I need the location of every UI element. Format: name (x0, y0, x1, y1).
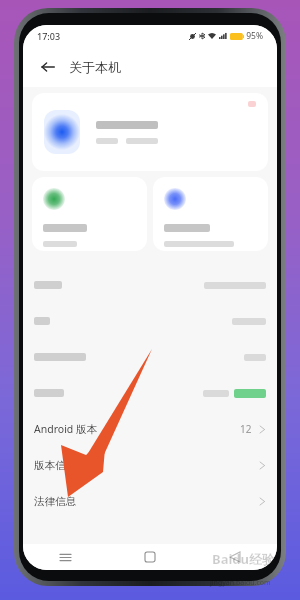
button[interactable] (23, 303, 277, 339)
button[interactable]: Back (192, 544, 277, 570)
button[interactable]: Android 版本 (23, 411, 277, 447)
staticText: Baidu经验 (212, 550, 275, 568)
button[interactable]: Recents (23, 544, 107, 570)
button[interactable]: Home (107, 544, 192, 570)
button[interactable] (32, 177, 147, 251)
button[interactable] (153, 177, 268, 251)
button[interactable] (32, 93, 268, 171)
staticText: 法律信息 (34, 495, 76, 508)
button[interactable] (23, 267, 277, 303)
button[interactable]: Back (35, 54, 61, 80)
button[interactable] (23, 339, 277, 375)
button[interactable]: 版本信息 (23, 447, 277, 483)
staticText: jingyan.baidu.com (210, 578, 271, 588)
staticText: 版本信息 (34, 459, 76, 472)
staticText: 95% (246, 30, 263, 42)
staticText: 关于本机 (69, 59, 121, 75)
staticText: 17:03 (37, 30, 61, 42)
button[interactable] (23, 375, 277, 411)
button[interactable]: 法律信息 (23, 483, 277, 519)
staticText: Android 版本 (34, 422, 98, 436)
staticText: 12 (240, 422, 252, 436)
